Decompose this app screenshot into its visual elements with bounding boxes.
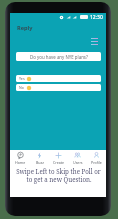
staticText: No [19, 85, 24, 90]
button[interactable]: Profile [87, 151, 106, 165]
button[interactable]: Create [49, 151, 68, 165]
staticText: Do you have any NYE plans? [30, 54, 88, 60]
button[interactable]: Users [68, 151, 87, 165]
button[interactable]: Home [10, 151, 30, 165]
staticText: 12:30 [90, 14, 103, 21]
staticText: Buzz [36, 160, 44, 165]
button[interactable]: Buzz [30, 151, 49, 165]
staticText: Create [53, 160, 65, 165]
staticText: Profile [91, 160, 102, 165]
button[interactable]: No [16, 84, 101, 91]
staticText: Swipe Left to Skip the Poll or [16, 167, 101, 175]
button[interactable]: Menu [91, 38, 98, 45]
staticText: to get a new Question. [26, 175, 92, 183]
staticText: Reply [17, 24, 33, 32]
button[interactable]: Yes [16, 75, 101, 82]
button[interactable]: Do you have any NYE plans? [16, 52, 101, 61]
staticText: Home [15, 160, 26, 165]
staticText: Yes [19, 76, 25, 81]
staticText: Users [73, 160, 83, 165]
